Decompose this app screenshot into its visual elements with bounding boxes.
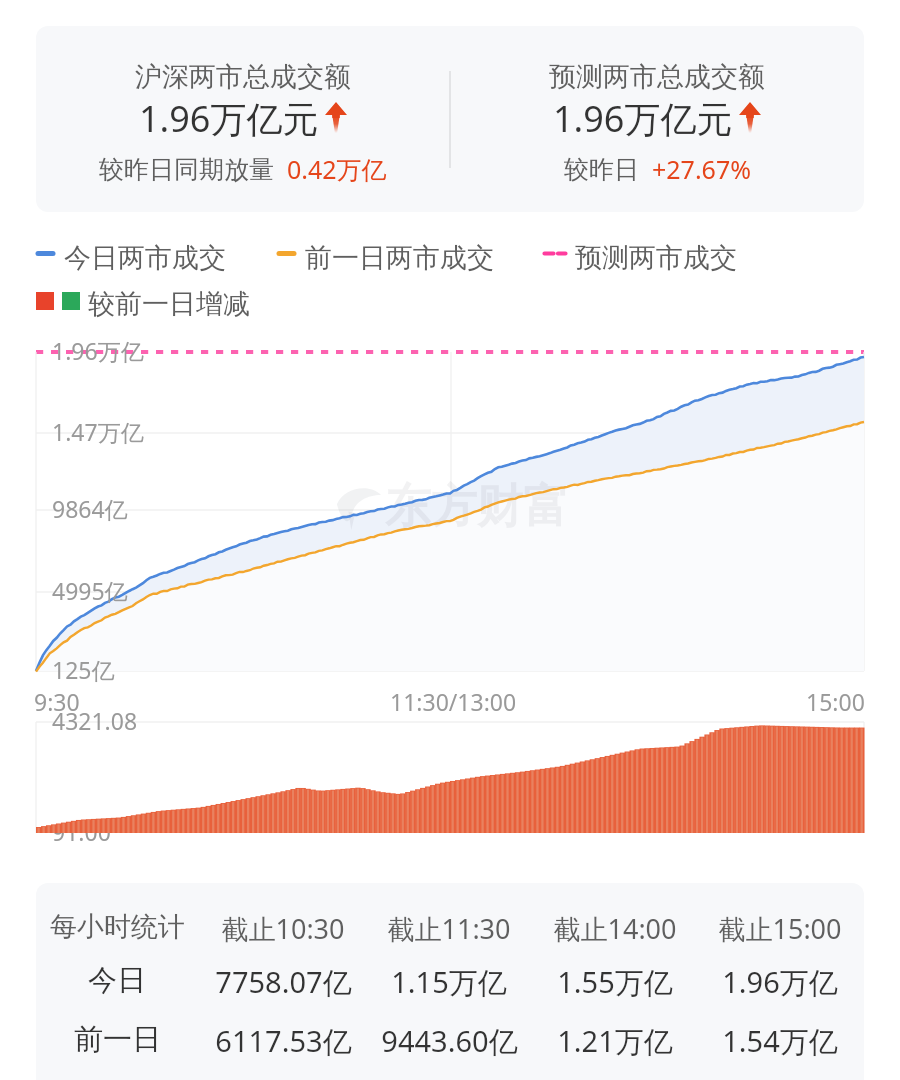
staticText: 125亿 — [52, 654, 115, 685]
staticText: 较前一日增减 — [88, 287, 250, 321]
staticText: 截止11:30 — [387, 910, 511, 947]
button[interactable]: 沪深两市总成交额 — [36, 26, 864, 212]
staticText: 今日两市成交 — [64, 241, 226, 275]
staticText: 较昨日 — [564, 154, 639, 185]
staticText: 6117.53亿 — [215, 1021, 352, 1061]
staticText: 1.96万亿 — [52, 335, 144, 366]
staticText: 1.55万亿 — [557, 962, 673, 1002]
staticText: 1.21万亿 — [557, 1021, 673, 1061]
staticText: 11:30/13:00 — [390, 686, 517, 717]
staticText: 9:30 — [34, 686, 80, 717]
staticText: 15:00 — [806, 686, 865, 717]
staticText: 0.42万亿 — [287, 152, 387, 186]
staticText: 91.00 — [52, 816, 111, 847]
staticText: 预测两市成交 — [575, 241, 737, 275]
staticText: +27.67% — [652, 152, 751, 186]
staticText: 前一日两市成交 — [305, 241, 494, 275]
staticText: 1.47万亿 — [52, 416, 144, 447]
staticText: 东方财富 — [385, 478, 569, 536]
staticText: 每小时统计 — [50, 910, 185, 944]
staticText: 1.96万亿元 — [139, 94, 319, 143]
staticText: 1.96万亿 — [722, 962, 838, 1002]
staticText: 4321.08 — [52, 705, 138, 736]
staticText: 前一日 — [74, 1021, 161, 1058]
staticText: 1.54万亿 — [722, 1021, 838, 1061]
staticText: 4995亿 — [52, 575, 128, 606]
staticText: 截止15:00 — [718, 910, 842, 947]
button[interactable]: 每小时统计 — [36, 883, 864, 1080]
staticText: 截止10:30 — [221, 910, 345, 947]
staticText: 较昨日同期放量 — [99, 154, 274, 185]
staticText: 9864亿 — [52, 493, 128, 524]
staticText: 预测两市总成交额 — [549, 60, 765, 94]
staticText: 截止14:00 — [553, 910, 677, 947]
staticText: 1.15万亿 — [391, 962, 507, 1002]
staticText: 今日 — [88, 962, 146, 999]
staticText: 1.96万亿元 — [553, 94, 733, 143]
staticText: 9443.60亿 — [381, 1021, 518, 1061]
staticText: 7758.07亿 — [215, 962, 352, 1002]
staticText: 沪深两市总成交额 — [135, 60, 351, 94]
